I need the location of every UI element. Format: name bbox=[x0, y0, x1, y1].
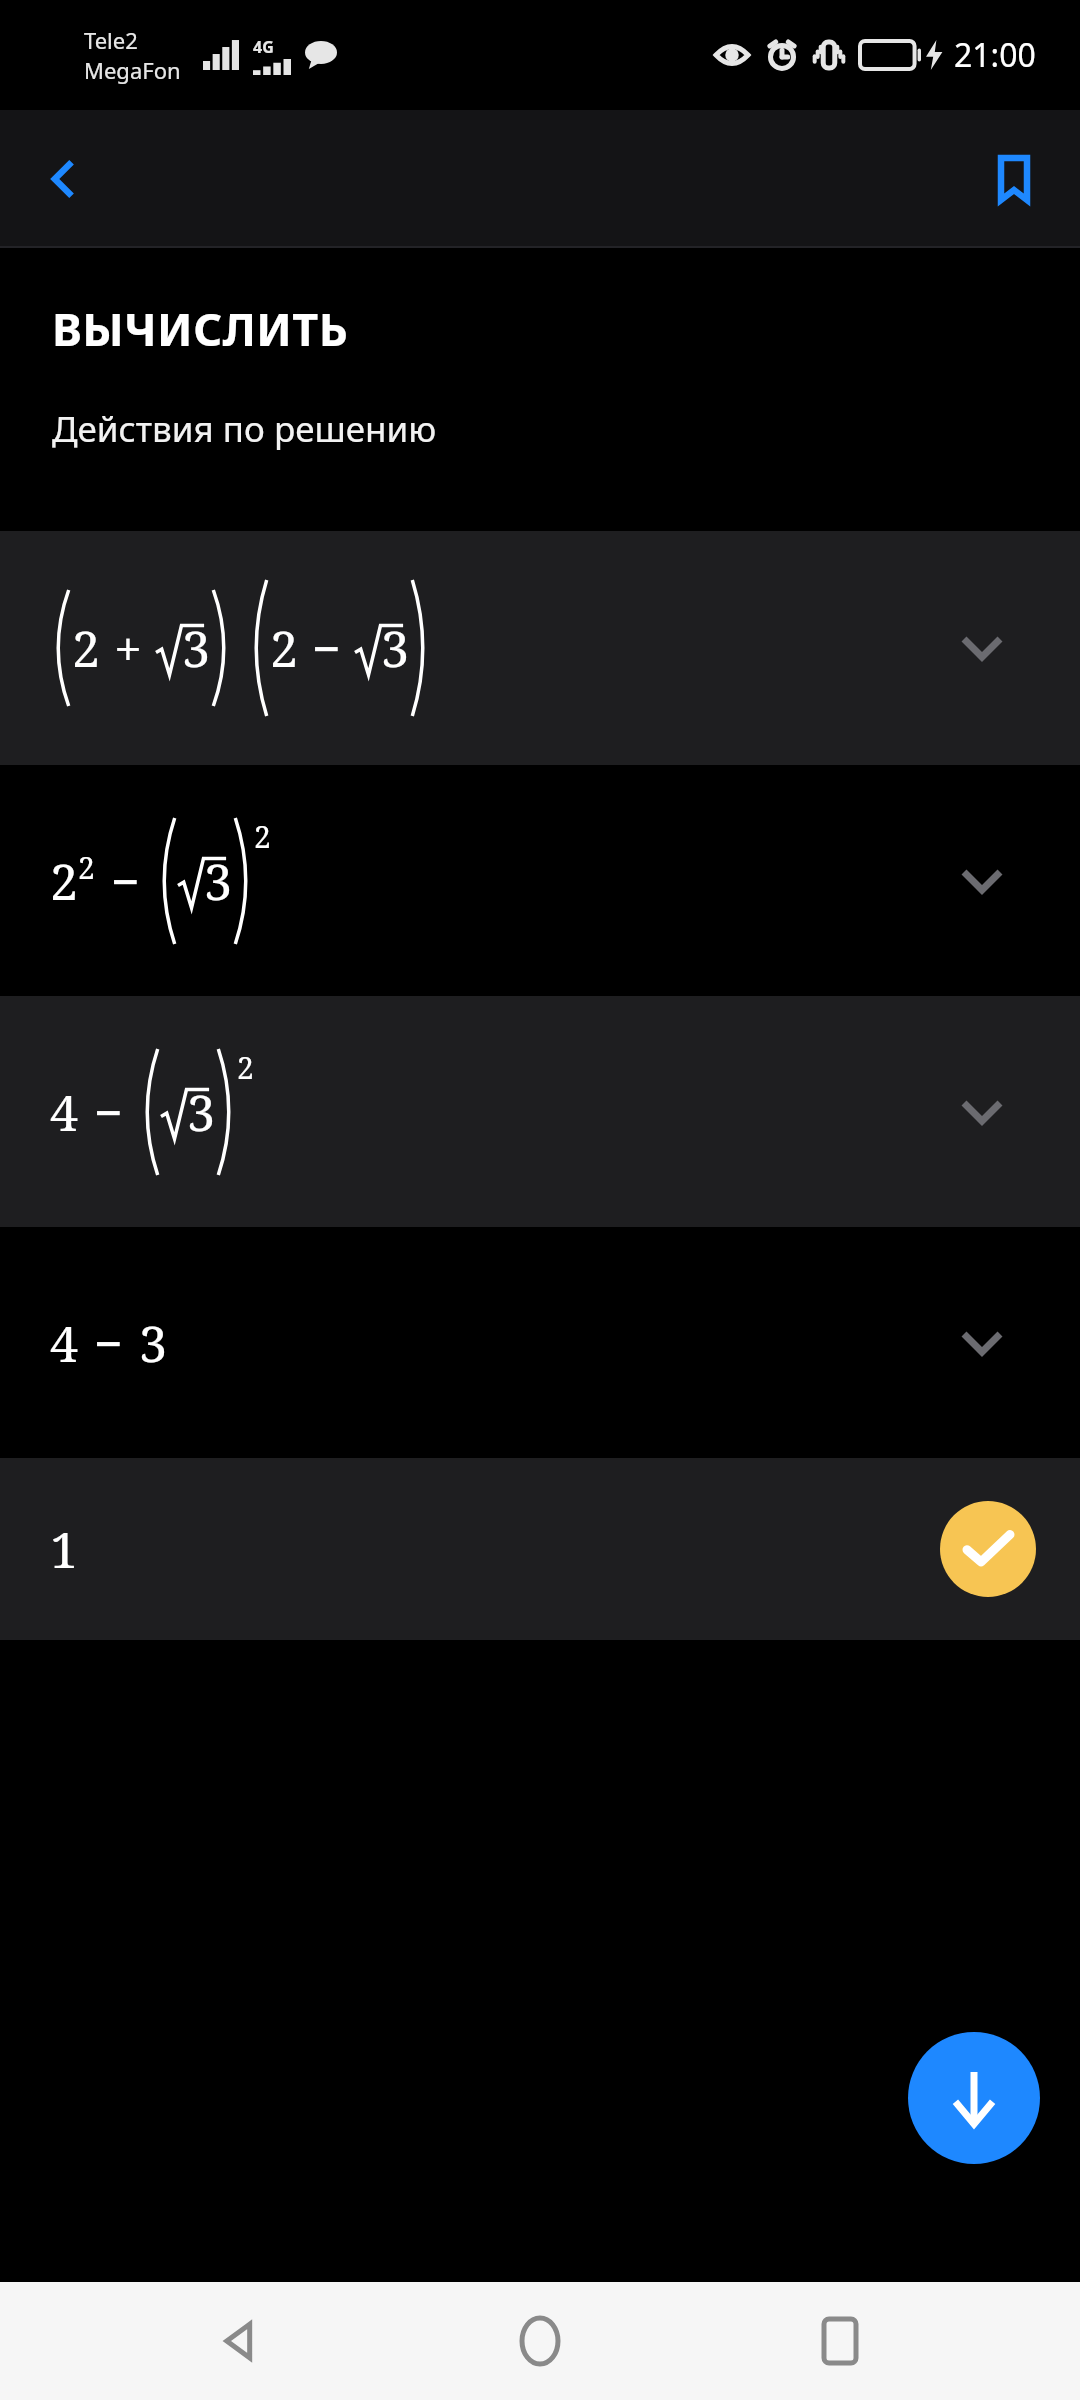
staticText: 3 bbox=[187, 1078, 215, 1146]
staticText: 2 bbox=[50, 847, 78, 915]
button[interactable]: Expand step bbox=[946, 612, 1018, 684]
staticText: + bbox=[114, 614, 142, 682]
button[interactable]: Expand step bbox=[946, 1307, 1018, 1379]
button[interactable]: Back bbox=[14, 129, 114, 229]
staticText: − bbox=[312, 614, 341, 682]
button[interactable]: 1 bbox=[0, 1458, 1080, 1640]
staticText: 4 bbox=[50, 1309, 78, 1377]
button[interactable]: Expand step bbox=[946, 845, 1018, 917]
button[interactable]: Expand step bbox=[946, 1076, 1018, 1148]
staticText: Tele2 bbox=[84, 25, 138, 55]
button[interactable]: 4 bbox=[0, 1227, 1080, 1458]
staticText: − bbox=[111, 847, 140, 915]
staticText: 2 bbox=[78, 847, 95, 888]
staticText: 2 bbox=[237, 1047, 254, 1088]
staticText: 21:00 bbox=[954, 33, 1036, 77]
staticText: 1 bbox=[50, 1515, 78, 1583]
staticText: Действия по решению bbox=[52, 405, 437, 453]
staticText: 3 bbox=[381, 614, 409, 682]
staticText: − bbox=[94, 1078, 123, 1146]
staticText: 2 bbox=[270, 614, 298, 682]
button[interactable]: Final answer bbox=[940, 1501, 1036, 1597]
button[interactable]: Back bbox=[180, 2282, 300, 2400]
staticText: − bbox=[94, 1309, 123, 1377]
button[interactable]: Bookmark bbox=[964, 129, 1064, 229]
button[interactable]: 4 bbox=[0, 996, 1080, 1227]
staticText: 2 bbox=[254, 816, 271, 857]
button[interactable]: 2 bbox=[0, 765, 1080, 996]
staticText: 3 bbox=[182, 614, 210, 682]
button[interactable]: 2 bbox=[0, 531, 1080, 765]
staticText: 4 bbox=[50, 1078, 78, 1146]
staticText: 4G bbox=[253, 36, 274, 58]
button[interactable]: Home bbox=[480, 2282, 600, 2400]
staticText: 2 bbox=[72, 614, 100, 682]
staticText: 3 bbox=[139, 1309, 167, 1377]
staticText: MegaFon bbox=[84, 55, 181, 85]
button[interactable]: Recents bbox=[780, 2282, 900, 2400]
staticText: ВЫЧИСЛИТЬ bbox=[52, 298, 349, 359]
button[interactable]: Scroll to bottom bbox=[908, 2032, 1040, 2164]
staticText: 3 bbox=[204, 847, 232, 915]
